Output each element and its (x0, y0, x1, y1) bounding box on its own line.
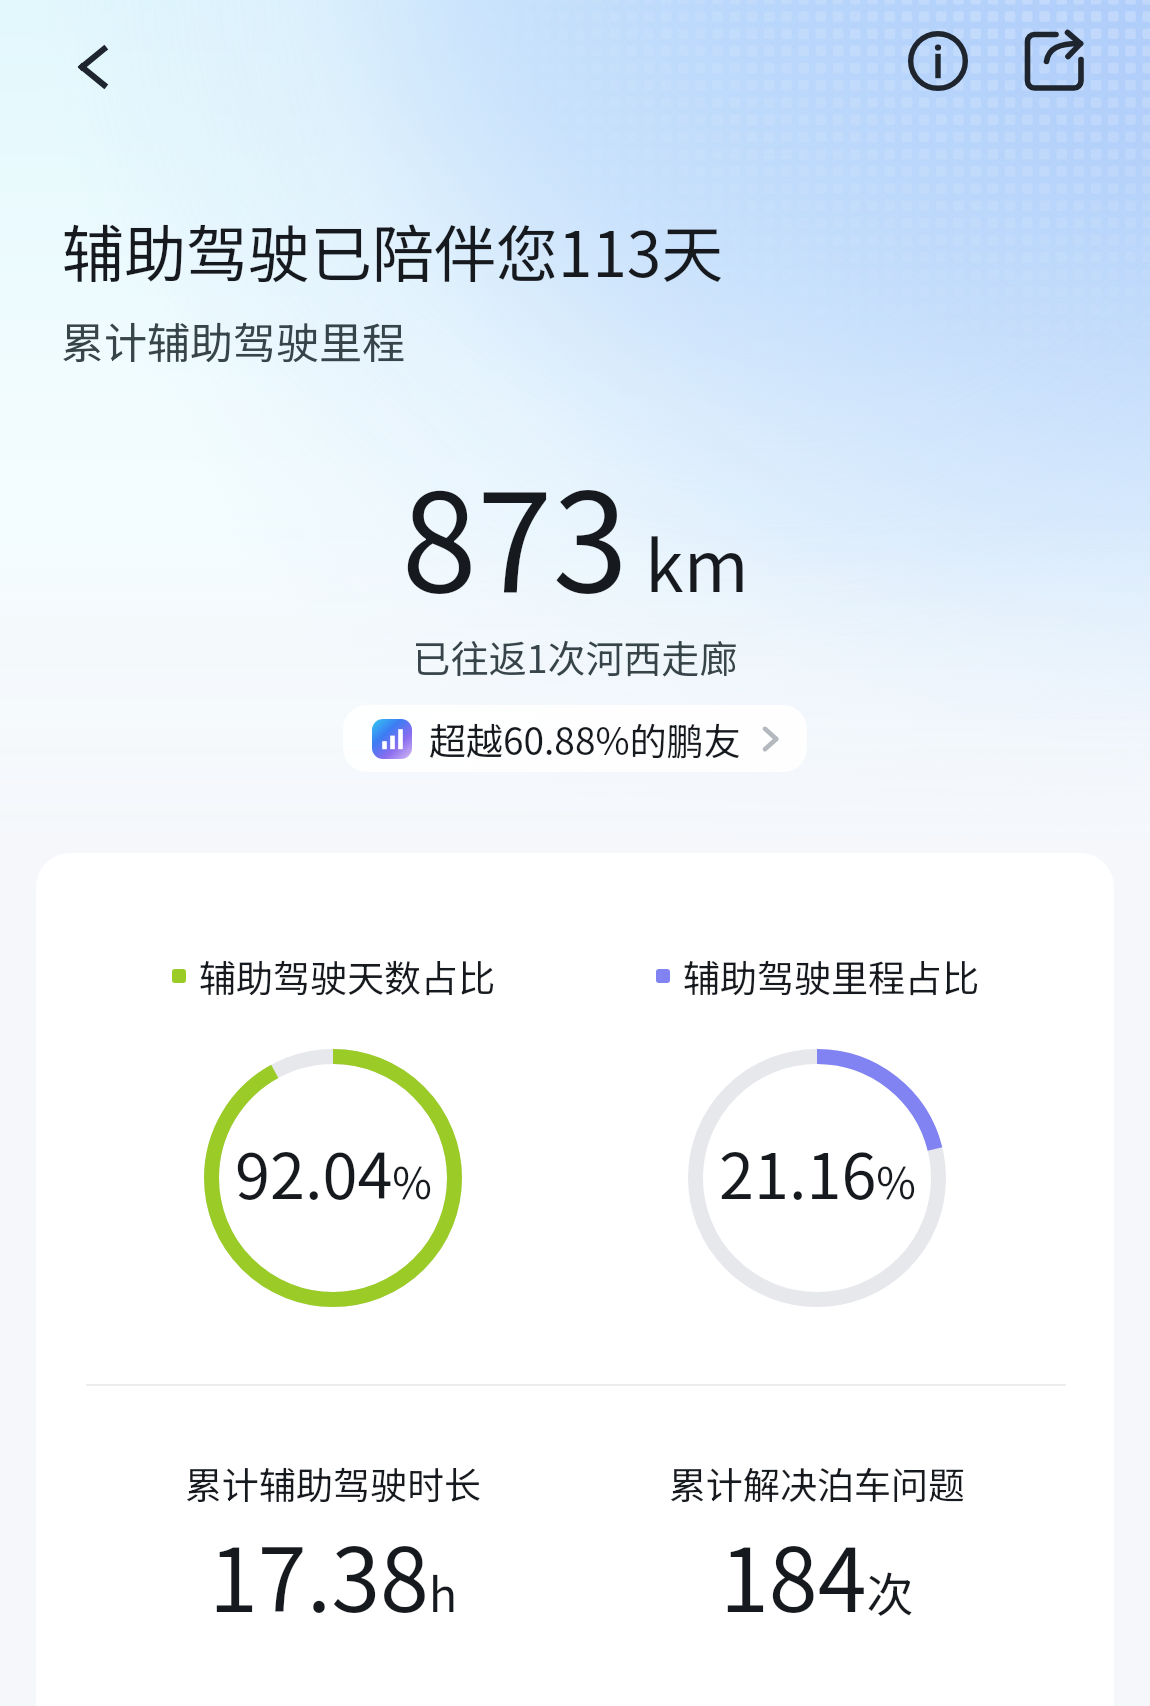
staticText: 累计解决泊车问题 (669, 1456, 965, 1510)
button[interactable]: Share (1013, 19, 1093, 99)
button[interactable]: Back (52, 26, 132, 106)
staticText: 已往返1次河西走廊 (0, 629, 1150, 684)
button[interactable]: 超越60.88%的鹏友 (343, 705, 807, 772)
staticText: 累计辅助驾驶时长 (185, 1456, 481, 1510)
staticText: 873 km (0, 434, 1150, 631)
staticText: 92.04% (235, 1126, 432, 1217)
staticText: 17.38h (209, 1510, 458, 1637)
staticText: 超越60.88%的鹏友 (429, 712, 741, 766)
staticText: 累计辅助驾驶里程 (61, 309, 405, 371)
staticText: 辅助驾驶里程占比 (683, 949, 979, 1003)
staticText: 184次 (720, 1510, 914, 1637)
staticText: 辅助驾驶天数占比 (199, 949, 495, 1003)
staticText: 21.16% (719, 1126, 916, 1217)
button[interactable]: Info (898, 21, 978, 101)
staticText: 辅助驾驶已陪伴您113天 (62, 205, 724, 295)
